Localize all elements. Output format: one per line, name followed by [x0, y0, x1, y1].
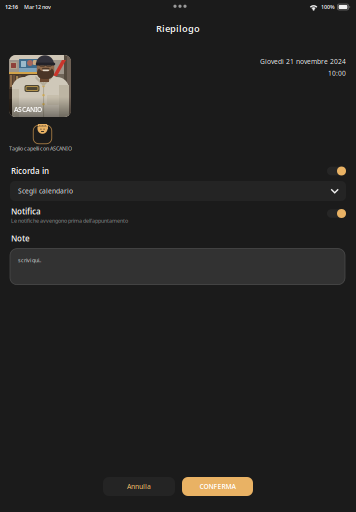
button[interactable]: Annulla [103, 477, 175, 496]
staticText: 100% [321, 3, 335, 11]
button[interactable]: Notifica [327, 209, 346, 218]
staticText: Note [11, 233, 30, 244]
staticText: Ricorda in [11, 166, 49, 176]
staticText: Giovedì 21 novembre 2024 [260, 57, 346, 66]
staticText: Notifica [11, 206, 41, 217]
button[interactable]: scrivi qui.. [10, 249, 345, 285]
staticText: Riepilogo [156, 22, 200, 35]
button[interactable]: CONFERMA [182, 477, 253, 496]
staticText: 12:16 [5, 3, 18, 11]
staticText: Annulla [127, 482, 151, 491]
staticText: Le notifiche avvengono prima dell'appunt… [11, 217, 128, 224]
staticText: scrivi qui.. [18, 257, 41, 264]
staticText: Scegli calendario [18, 187, 73, 195]
staticText: CONFERMA [199, 482, 235, 491]
button[interactable]: Scegli calendario [10, 181, 346, 201]
staticText: Taglio capelli con ASCANIO [9, 145, 72, 152]
staticText: 10:00 [328, 69, 346, 78]
button[interactable]: Ricorda in [327, 166, 346, 175]
staticText: ASCANIO [14, 105, 42, 114]
staticText: Mar 12 nov [24, 3, 51, 11]
